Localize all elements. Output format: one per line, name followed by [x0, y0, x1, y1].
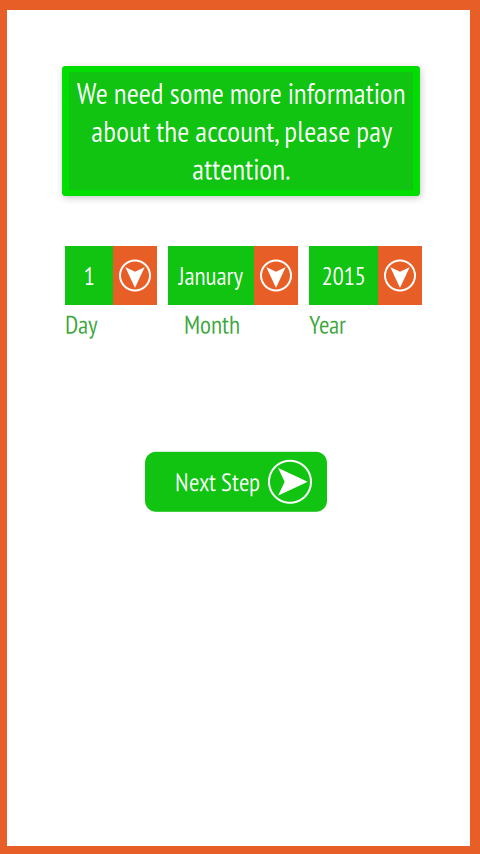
staticText: Day — [65, 308, 98, 341]
staticText: Year — [309, 308, 346, 341]
staticText: 1 — [83, 259, 94, 292]
button[interactable]: Next Step — [145, 452, 327, 512]
staticText: We need some more information about the … — [76, 74, 405, 188]
staticText: Next Step — [175, 465, 260, 498]
staticText: Month — [184, 308, 240, 341]
button[interactable]: January — [168, 246, 298, 305]
staticText: 2015 — [321, 259, 365, 292]
button[interactable]: 1 — [65, 246, 157, 305]
staticText: January — [178, 259, 243, 292]
button[interactable]: 2015 — [309, 246, 422, 305]
